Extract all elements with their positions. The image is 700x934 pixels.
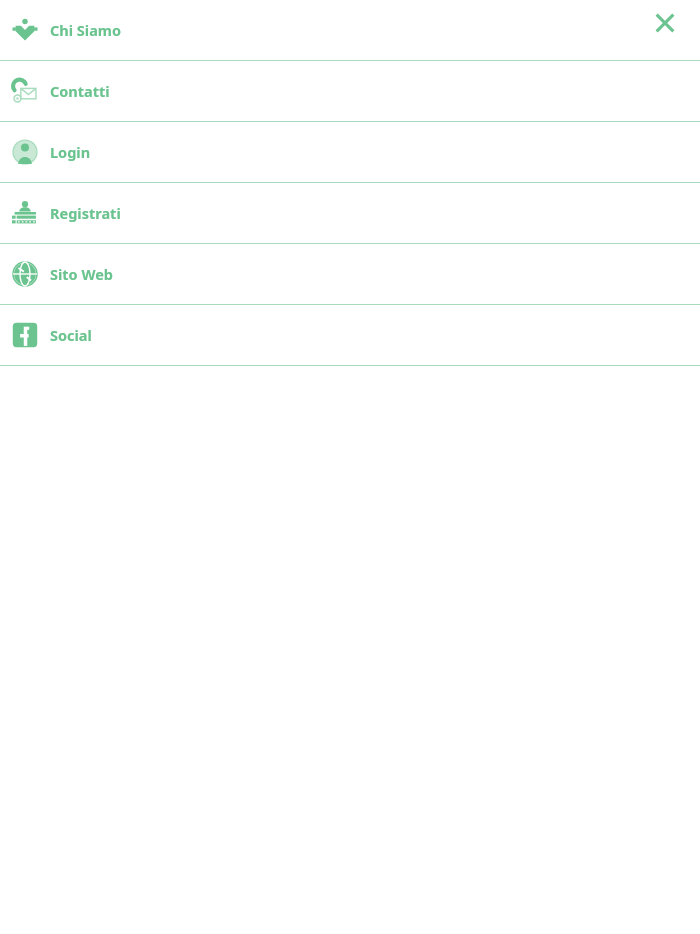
button[interactable]: Contatti xyxy=(0,61,700,121)
button[interactable]: Login xyxy=(0,122,700,182)
staticText: Contatti xyxy=(50,81,110,101)
staticText: Login xyxy=(50,142,91,162)
button[interactable]: Social xyxy=(0,305,700,365)
button[interactable]: Registrati xyxy=(0,183,700,243)
staticText: Social xyxy=(50,325,92,345)
button[interactable]: Close xyxy=(644,2,686,44)
staticText: Chi Siamo xyxy=(50,20,122,40)
button[interactable]: Chi Siamo xyxy=(0,0,700,60)
staticText: Sito Web xyxy=(50,264,114,284)
staticText: Registrati xyxy=(50,203,121,223)
button[interactable]: Sito Web xyxy=(0,244,700,304)
